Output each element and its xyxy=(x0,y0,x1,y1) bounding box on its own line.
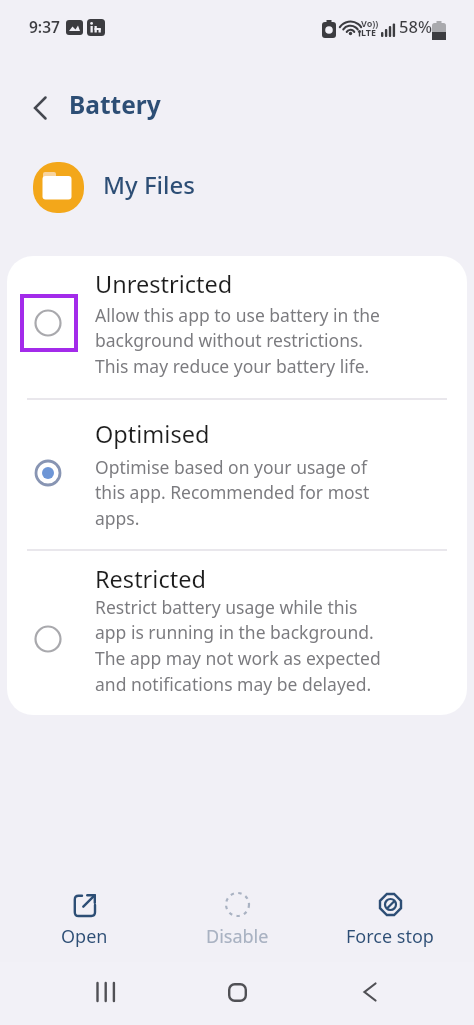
staticText: Optimise based on your usage of this app… xyxy=(95,455,370,531)
button[interactable] xyxy=(86,970,126,1014)
button[interactable] xyxy=(350,970,390,1014)
staticText: Force stop xyxy=(346,924,434,949)
staticText: Open xyxy=(61,924,108,949)
button[interactable]: Optimised xyxy=(7,400,467,549)
staticText: Disable xyxy=(206,924,269,949)
staticText: Vo)) xyxy=(361,17,379,29)
button[interactable]: Unrestricted xyxy=(7,256,467,398)
staticText: LTE xyxy=(361,26,377,38)
staticText: Battery xyxy=(69,88,161,121)
staticText: Optimised xyxy=(95,418,210,450)
staticText: Restricted xyxy=(95,563,206,595)
button[interactable]: My Files xyxy=(33,162,196,213)
button[interactable]: Disable xyxy=(182,884,292,949)
staticText: Allow this app to use battery in the bac… xyxy=(95,303,380,379)
button[interactable]: Open xyxy=(29,884,139,949)
staticText: Unrestricted xyxy=(95,268,233,300)
button[interactable] xyxy=(217,970,257,1014)
button[interactable]: Restricted xyxy=(7,551,467,715)
staticText: 9:37 xyxy=(29,16,60,37)
button[interactable] xyxy=(19,87,61,129)
staticText: 58% xyxy=(399,15,432,37)
staticText: My Files xyxy=(103,168,196,201)
button[interactable]: Force stop xyxy=(335,884,445,949)
staticText: Restrict battery usage while this app is… xyxy=(95,595,381,697)
